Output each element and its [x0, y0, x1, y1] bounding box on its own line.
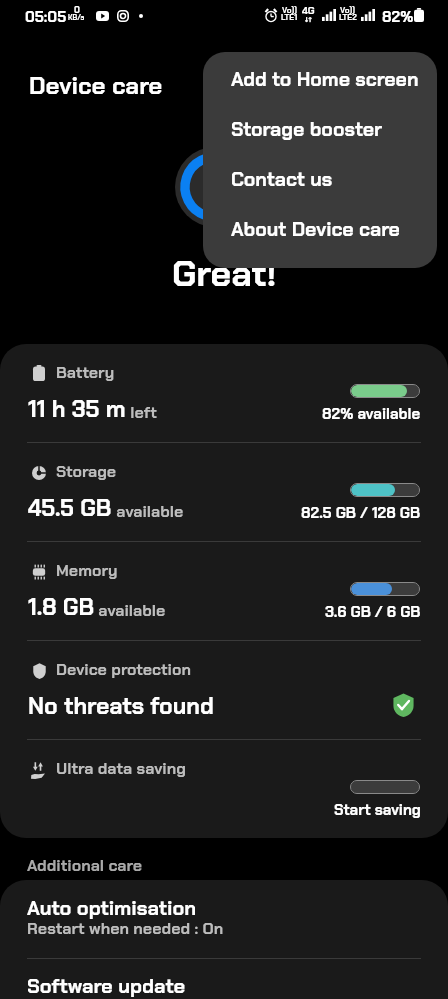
staticText: available: [112, 501, 184, 522]
staticText: Vo)): [340, 5, 355, 15]
staticText: 82%: [382, 7, 414, 27]
other: Ultra data saving: [31, 762, 45, 779]
staticText: KB/s: [68, 13, 85, 22]
staticText: Ultra data saving: [56, 758, 186, 779]
staticText: Software update: [27, 973, 186, 999]
staticText: LTE2: [339, 12, 357, 22]
button[interactable]: Ultra data saving: [0, 740, 448, 838]
staticText: available: [94, 600, 166, 621]
staticText: 11 h 35 m: [28, 394, 126, 424]
staticText: Add to Home screen: [231, 67, 419, 92]
other: Storage: [32, 466, 46, 480]
staticText: Memory: [56, 560, 118, 581]
staticText: Auto optimisation: [27, 895, 197, 921]
button[interactable]: Storage: [0, 443, 448, 541]
button[interactable]: About Device care: [203, 204, 437, 254]
button[interactable]: Storage booster: [203, 104, 437, 154]
button[interactable]: Device protection: [0, 641, 448, 739]
staticText: LTE1: [281, 12, 298, 22]
staticText: Battery: [56, 362, 115, 383]
staticText: Additional care: [27, 855, 142, 876]
staticText: No threats found: [28, 691, 214, 721]
staticText: 82% available: [322, 404, 421, 424]
staticText: Restart when needed : On: [27, 918, 224, 939]
staticText: 4G: [302, 4, 315, 17]
staticText: 05:05: [25, 7, 67, 27]
button[interactable]: Memory: [0, 542, 448, 640]
button[interactable]: Battery: [0, 344, 448, 442]
button[interactable]: Add to Home screen: [203, 54, 437, 104]
other: Battery: [33, 365, 45, 381]
staticText: Device care: [29, 70, 163, 101]
staticText: 1.8 GB: [28, 592, 94, 622]
staticText: Storage: [56, 461, 117, 482]
staticText: 3.6 GB / 6 GB: [325, 602, 421, 622]
staticText: About Device care: [231, 217, 400, 242]
staticText: Storage booster: [231, 117, 383, 142]
staticText: 82.5 GB / 128 GB: [301, 503, 421, 523]
button[interactable]: Contact us: [203, 154, 437, 204]
other: Protected: [393, 693, 414, 717]
staticText: left: [126, 402, 157, 423]
staticText: 45.5 GB: [28, 493, 112, 523]
staticText: Great!: [172, 250, 277, 297]
other: Memory: [32, 564, 46, 580]
staticText: Start saving: [334, 800, 421, 820]
other: Device protection: [33, 663, 46, 679]
staticText: ↓↑: [305, 14, 313, 24]
staticText: Vo)): [282, 5, 297, 15]
staticText: Device protection: [56, 659, 191, 680]
staticText: Contact us: [231, 167, 333, 192]
button[interactable]: Software update: [0, 959, 448, 999]
button[interactable]: Auto optimisation: [0, 880, 448, 958]
staticText: 0: [74, 4, 80, 16]
